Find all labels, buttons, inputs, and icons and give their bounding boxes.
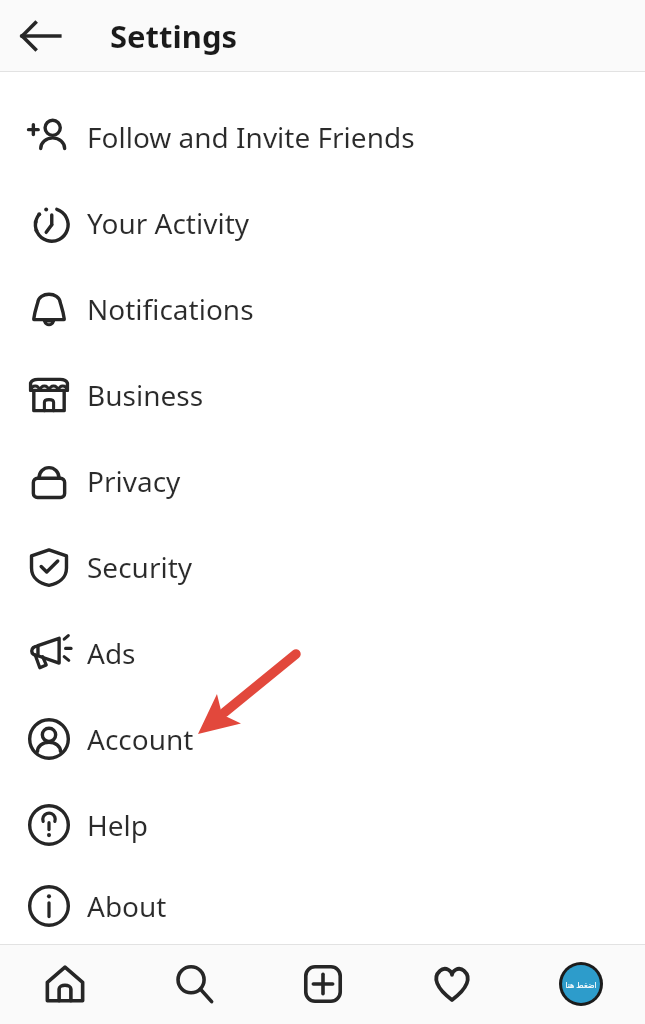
button[interactable]: Security bbox=[0, 524, 645, 610]
staticText: Ads bbox=[87, 634, 136, 672]
button[interactable]: Ads bbox=[0, 610, 645, 696]
button[interactable]: Notifications bbox=[0, 266, 645, 352]
staticText: Help bbox=[87, 806, 148, 844]
button[interactable]: Follow and Invite Friends bbox=[0, 94, 645, 180]
button[interactable]: New post bbox=[258, 944, 387, 1024]
button[interactable]: Search bbox=[129, 944, 258, 1024]
staticText: Settings bbox=[110, 15, 238, 57]
staticText: Business bbox=[87, 376, 204, 414]
button[interactable]: Back bbox=[10, 5, 72, 67]
button[interactable]: Help bbox=[0, 782, 645, 868]
button[interactable]: Home bbox=[0, 944, 129, 1024]
staticText: Follow and Invite Friends bbox=[87, 118, 415, 156]
staticText: Notifications bbox=[87, 290, 254, 328]
staticText: Security bbox=[87, 548, 193, 586]
staticText: Your Activity bbox=[87, 204, 250, 242]
button[interactable]: Your Activity bbox=[0, 180, 645, 266]
staticText: Privacy bbox=[87, 462, 181, 500]
button[interactable]: Profile bbox=[516, 944, 645, 1024]
staticText: About bbox=[87, 887, 167, 925]
button[interactable]: Account bbox=[0, 696, 645, 782]
button[interactable]: Business bbox=[0, 352, 645, 438]
button[interactable]: Activity bbox=[387, 944, 516, 1024]
button[interactable]: About bbox=[0, 868, 645, 944]
staticText: Account bbox=[87, 720, 194, 758]
button[interactable]: Privacy bbox=[0, 438, 645, 524]
staticText: اضغط هنا bbox=[565, 979, 597, 990]
